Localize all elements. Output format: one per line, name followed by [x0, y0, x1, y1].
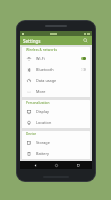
staticText: Wireless & networks	[26, 48, 58, 52]
button[interactable]: Bluetooth	[22, 64, 90, 75]
staticText: Wi-Fi	[36, 56, 45, 61]
staticText: Data usage	[36, 78, 57, 83]
button[interactable]: Battery	[22, 148, 90, 159]
staticText: Device	[26, 132, 37, 136]
button[interactable]: Wi-Fi toggle on	[81, 57, 86, 60]
button[interactable]: Recent apps	[71, 161, 85, 169]
staticText: Storage	[36, 140, 50, 145]
button[interactable]: Back	[28, 161, 42, 169]
button[interactable]: Data usage	[22, 75, 90, 86]
staticText: Display	[36, 109, 49, 114]
button[interactable]: Search	[82, 37, 89, 44]
button[interactable]: Wi-Fi	[22, 53, 90, 64]
button[interactable]: Storage	[22, 137, 90, 148]
staticText: Location	[36, 120, 52, 125]
button[interactable]: Home	[49, 161, 63, 169]
button[interactable]: Location	[22, 117, 90, 128]
button[interactable]: More	[22, 86, 90, 97]
staticText: Personalization	[26, 101, 50, 105]
button[interactable]: Bluetooth toggle off	[81, 68, 86, 71]
staticText: Battery	[36, 151, 49, 156]
button[interactable]: Display	[22, 106, 90, 117]
staticText: Settings	[23, 38, 41, 44]
staticText: More	[36, 89, 46, 94]
staticText: Bluetooth	[36, 67, 54, 72]
